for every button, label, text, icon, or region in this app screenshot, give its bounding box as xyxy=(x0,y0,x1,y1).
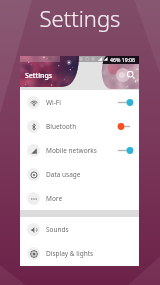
staticText: More xyxy=(46,194,63,203)
staticText: Sounds xyxy=(46,225,69,234)
staticText: Display & lights xyxy=(46,249,94,258)
button[interactable]: Mobile networks xyxy=(20,138,139,162)
button[interactable]: Sounds xyxy=(20,217,139,241)
button[interactable]: Wi-Fi xyxy=(20,90,139,114)
button[interactable]: Display & lights xyxy=(20,241,139,265)
staticText: Bluetooth xyxy=(46,122,77,131)
button[interactable]: Search xyxy=(126,70,136,80)
staticText: Data usage xyxy=(46,170,81,179)
staticText: 46% 19:06 xyxy=(110,56,135,63)
button[interactable]: More xyxy=(20,186,139,210)
staticText: Settings xyxy=(25,71,53,81)
staticText: Wi-Fi xyxy=(46,98,61,107)
button[interactable]: Data usage xyxy=(20,162,139,186)
staticText: Settings xyxy=(0,3,160,33)
button[interactable]: Bluetooth xyxy=(20,114,139,138)
staticText: Mobile networks xyxy=(46,146,97,155)
